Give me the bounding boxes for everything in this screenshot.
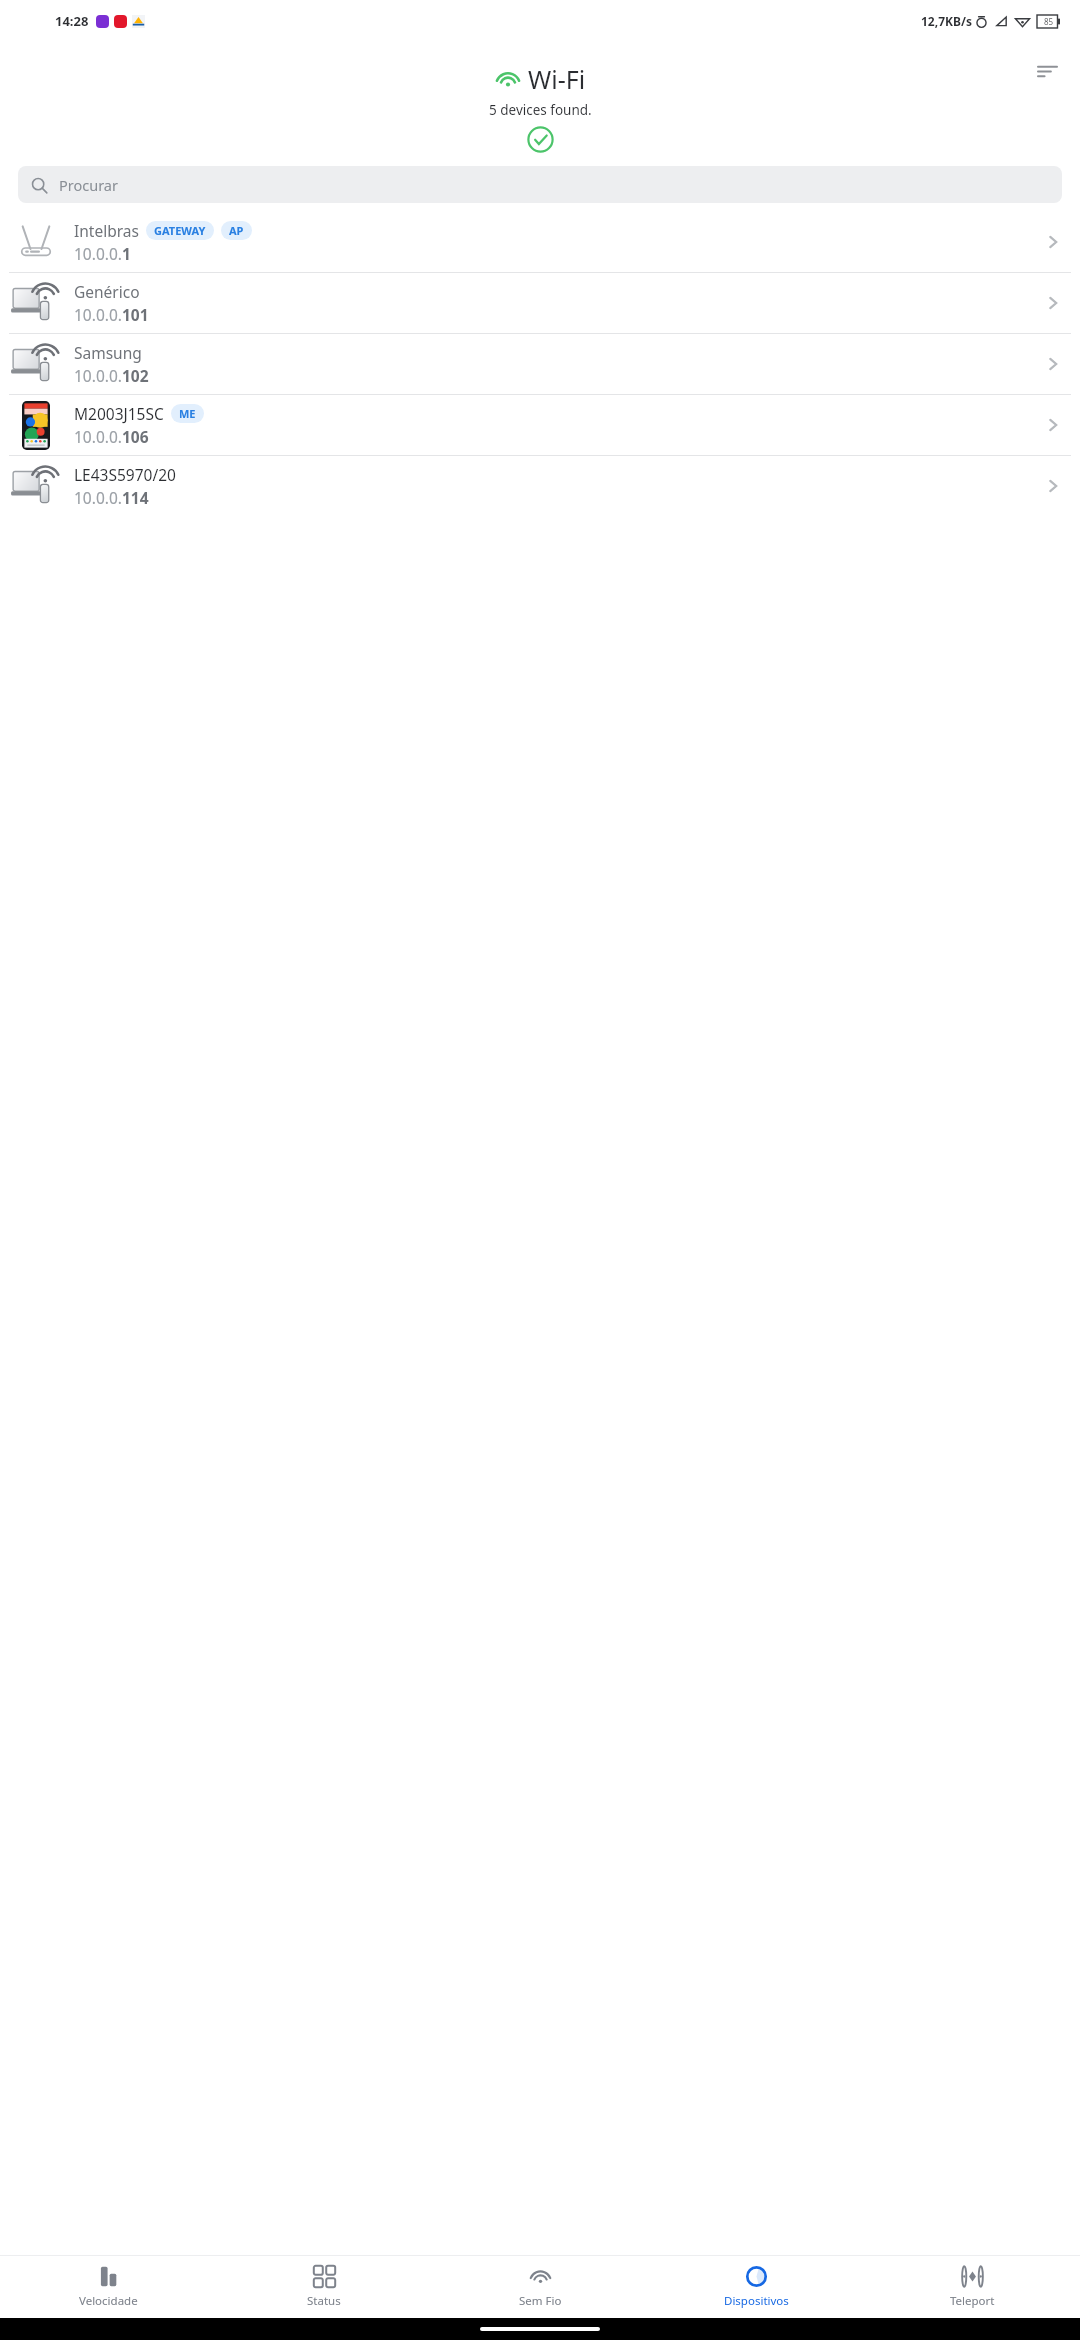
button[interactable]: Teleport [864,2256,1080,2318]
staticText: LE43S5970/20 [74,464,176,485]
button[interactable]: Procurar [18,166,1062,203]
button[interactable]: Sort devices [1026,50,1068,92]
staticText: 10.0.0.101 [74,304,149,325]
staticText: 10.0.0.106 [74,426,149,447]
button[interactable]: Sem Fio [432,2256,648,2318]
staticText: 10.0.0.114 [74,487,149,508]
staticText: M2003J15SC [74,403,164,424]
button[interactable]: Genérico [0,273,1080,333]
staticText: Status [307,2293,341,2309]
staticText: 14:28 [55,12,89,30]
staticText: Sem Fio [519,2293,562,2309]
staticText: Teleport [950,2293,995,2309]
staticText: ME [179,406,196,421]
button[interactable]: Velocidade [0,2256,216,2318]
staticText: GATEWAY [154,223,206,238]
button[interactable]: Status [216,2256,432,2318]
button[interactable]: Samsung [0,334,1080,394]
staticText: 10.0.0.102 [74,365,149,386]
staticText: 85 [1044,16,1054,27]
staticText: Velocidade [79,2293,138,2309]
staticText: Procurar [59,175,118,195]
staticText: 12,7KB/s [921,13,972,29]
button[interactable]: Dispositivos [648,2256,864,2318]
button[interactable]: M2003J15SC [0,395,1080,455]
staticText: AP [229,223,244,238]
staticText: Dispositivos [724,2293,789,2309]
staticText: Intelbras [74,220,139,241]
staticText: 10.0.0.1 [74,243,131,264]
staticText: Genérico [74,281,140,302]
button[interactable]: Intelbras [0,212,1080,272]
button[interactable]: LE43S5970/20 [0,456,1080,516]
staticText: 5 devices found. [489,101,592,119]
staticText: Wi-Fi [528,62,586,96]
staticText: Samsung [74,342,142,363]
